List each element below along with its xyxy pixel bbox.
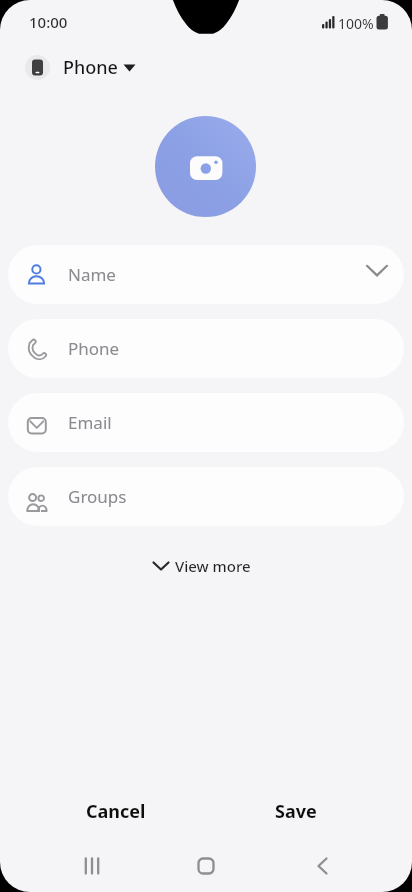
button[interactable] bbox=[155, 116, 256, 217]
staticText: Name bbox=[68, 263, 116, 286]
staticText: 10:00 bbox=[29, 12, 68, 32]
button[interactable] bbox=[72, 846, 112, 886]
button[interactable]: Save bbox=[226, 785, 366, 837]
staticText: Phone bbox=[63, 55, 118, 80]
staticText: Groups bbox=[68, 485, 127, 508]
staticText: Phone bbox=[68, 337, 120, 360]
staticText: Save bbox=[275, 799, 317, 824]
button[interactable]: Name bbox=[8, 245, 404, 304]
button[interactable]: Cancel bbox=[46, 785, 186, 837]
staticText: Email bbox=[68, 411, 112, 434]
button[interactable]: Email bbox=[8, 393, 404, 452]
staticText: Cancel bbox=[86, 799, 146, 824]
button[interactable]: Phone bbox=[8, 319, 404, 378]
button[interactable]: Groups bbox=[8, 467, 404, 526]
button[interactable]: View more bbox=[141, 546, 261, 586]
staticText: 100% bbox=[338, 14, 374, 33]
button[interactable] bbox=[302, 846, 342, 886]
staticText: View more bbox=[175, 556, 251, 576]
button[interactable] bbox=[186, 846, 226, 886]
button[interactable] bbox=[25, 55, 50, 80]
